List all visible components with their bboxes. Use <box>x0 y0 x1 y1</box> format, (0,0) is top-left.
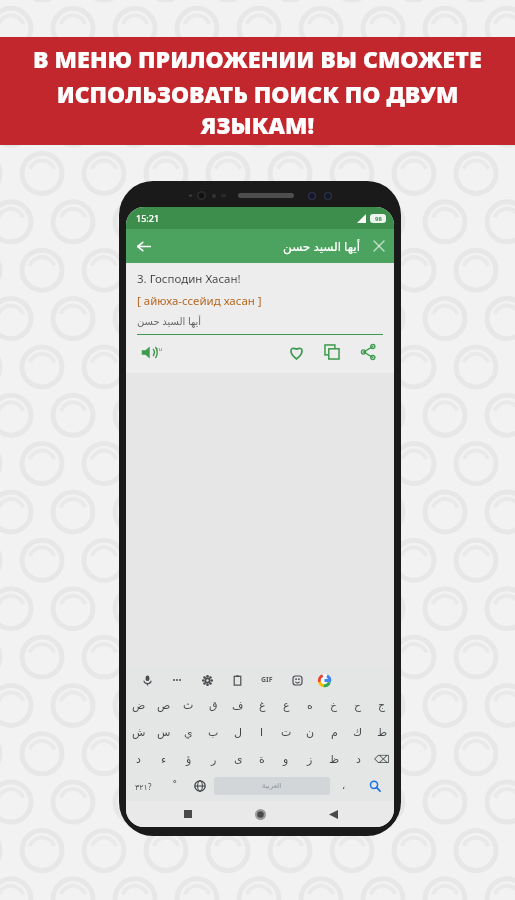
staticText: ء <box>161 753 167 766</box>
staticText: ظ <box>329 753 340 766</box>
button[interactable]: ا <box>250 719 274 746</box>
button[interactable]: و <box>274 746 298 773</box>
staticText: د <box>356 753 361 766</box>
staticText: ج <box>378 699 386 712</box>
button[interactable]: ش <box>126 719 151 746</box>
staticText: ش <box>132 726 146 739</box>
button[interactable]: ح <box>346 692 370 719</box>
staticText: В МЕНЮ ПРИЛОЖЕНИИ ВЫ СМОЖЕТЕ <box>33 43 482 74</box>
staticText: ه <box>307 699 313 712</box>
staticText: ru <box>156 345 163 353</box>
button[interactable]: Voice input <box>132 668 162 692</box>
staticText: ت <box>281 726 292 739</box>
staticText: س <box>157 726 171 739</box>
button[interactable]: ص <box>151 692 176 719</box>
button[interactable]: Stickers <box>282 668 312 692</box>
staticText: 98 <box>375 215 382 223</box>
staticText: ، <box>342 780 346 792</box>
button[interactable]: د <box>346 746 370 773</box>
staticText: ؤ <box>186 753 192 766</box>
button[interactable]: Copy <box>317 339 347 365</box>
staticText: ث <box>183 699 194 712</box>
staticText: [ айюха-ссейид хасан ] <box>137 293 262 309</box>
staticText: 3. Господин Хасан! <box>137 271 241 287</box>
button[interactable]: ى <box>226 746 250 773</box>
button[interactable]: ع <box>274 692 298 719</box>
staticText: ح <box>354 699 362 712</box>
staticText: ي <box>184 726 193 739</box>
staticText: خ <box>330 699 338 712</box>
button[interactable]: GIF <box>252 668 282 692</box>
button[interactable]: Change language <box>186 773 214 799</box>
staticText: ف <box>232 699 244 712</box>
button[interactable]: غ <box>250 692 274 719</box>
staticText: ر <box>211 753 217 766</box>
staticText: ة <box>259 753 265 766</box>
staticText: و <box>283 753 289 766</box>
button[interactable]: س <box>151 719 176 746</box>
button[interactable]: Play audio <box>137 339 167 365</box>
staticText: ى <box>234 753 243 766</box>
button[interactable]: ف <box>226 692 250 719</box>
button[interactable]: Recents <box>177 803 199 825</box>
button[interactable]: ء <box>151 746 176 773</box>
button[interactable]: Search <box>358 773 391 799</box>
button[interactable]: ل <box>226 719 250 746</box>
button[interactable]: Back <box>126 229 160 263</box>
staticText: GIF <box>261 675 273 685</box>
button[interactable]: ث <box>176 692 201 719</box>
button[interactable]: ر <box>201 746 226 773</box>
staticText: ب <box>208 726 219 739</box>
button[interactable]: Back <box>322 803 344 825</box>
button[interactable]: ٣٢١? <box>129 773 158 799</box>
button[interactable]: Share <box>353 339 383 365</box>
button[interactable]: ط <box>370 719 394 746</box>
staticText: ز <box>307 753 313 766</box>
button[interactable]: Home <box>249 803 271 825</box>
button[interactable]: Favorite <box>281 339 311 365</box>
button[interactable]: ض <box>126 692 151 719</box>
staticText: ٣٢١? <box>135 781 152 792</box>
staticText: ق <box>209 699 218 712</box>
button[interactable]: Clipboard <box>222 668 252 692</box>
button[interactable]: ك <box>346 719 370 746</box>
staticText: ك <box>353 726 363 739</box>
staticText: ط <box>377 726 388 739</box>
button[interactable]: ق <box>201 692 226 719</box>
button[interactable]: Settings <box>192 668 222 692</box>
staticText: 15:21 <box>136 212 160 224</box>
staticText: ل <box>234 726 242 739</box>
button[interactable]: م <box>322 719 346 746</box>
button[interactable]: ب <box>201 719 226 746</box>
button[interactable]: ْ <box>158 773 186 799</box>
staticText: ИСПОЛЬЗОВАТЬ ПОИСК ПО ДВУМ ЯЗЫКАМ! <box>0 78 515 140</box>
button[interactable]: ز <box>298 746 322 773</box>
button[interactable]: د <box>126 746 151 773</box>
button[interactable]: Clear <box>364 231 394 261</box>
staticText: أيها السيد حسن <box>137 314 202 328</box>
staticText: العربية <box>262 782 282 790</box>
button[interactable]: More options <box>162 668 192 692</box>
button[interactable]: ؤ <box>176 746 201 773</box>
button[interactable]: ، <box>330 773 358 799</box>
button[interactable]: ج <box>370 692 394 719</box>
button[interactable]: ظ <box>322 746 346 773</box>
button[interactable]: ة <box>250 746 274 773</box>
button[interactable]: ت <box>274 719 298 746</box>
button[interactable]: العربية <box>214 777 330 795</box>
staticText: د <box>136 753 141 766</box>
button[interactable]: Google <box>312 668 336 692</box>
staticText: ⌫ <box>374 753 390 766</box>
staticText: ع <box>283 699 290 712</box>
button[interactable]: ⌫ <box>370 746 394 773</box>
staticText: ن <box>306 726 315 739</box>
button[interactable]: ه <box>298 692 322 719</box>
staticText: م <box>331 726 338 739</box>
staticText: ص <box>157 699 171 712</box>
staticText: غ <box>259 699 266 712</box>
staticText: أيها السيد حسن <box>283 238 360 254</box>
button[interactable]: خ <box>322 692 346 719</box>
button[interactable]: ي <box>176 719 201 746</box>
staticText: ا <box>260 726 264 739</box>
button[interactable]: ن <box>298 719 322 746</box>
